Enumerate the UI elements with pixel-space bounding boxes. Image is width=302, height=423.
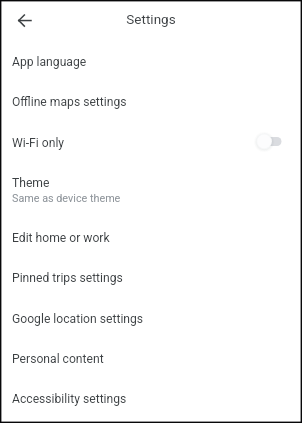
staticText: Edit home or work <box>12 231 110 245</box>
staticText: App language <box>12 55 87 69</box>
staticText: Personal content <box>12 352 104 366</box>
staticText: Accessibility settings <box>12 392 127 406</box>
button[interactable]: Google location settings <box>0 293 302 333</box>
button[interactable]: Accessibility settings <box>0 373 302 422</box>
staticText: Pinned trips settings <box>12 271 123 285</box>
staticText: Offline maps settings <box>12 95 127 109</box>
button[interactable]: App language <box>0 43 302 76</box>
button[interactable]: Wi-Fi only <box>252 128 286 154</box>
staticText: Same as device theme <box>12 192 121 205</box>
button[interactable]: Offline maps settings <box>0 76 302 116</box>
button[interactable]: Wi-Fi only <box>0 117 302 157</box>
button[interactable]: Pinned trips settings <box>0 252 302 292</box>
staticText: Google location settings <box>12 312 144 326</box>
staticText: Wi-Fi only <box>12 136 65 150</box>
button[interactable]: Theme <box>0 157 302 205</box>
button[interactable]: Personal content <box>0 333 302 373</box>
staticText: Theme <box>12 176 50 190</box>
button[interactable]: Edit home or work <box>0 205 302 253</box>
staticText: Settings <box>126 11 176 27</box>
button[interactable]: Back <box>6 7 43 35</box>
